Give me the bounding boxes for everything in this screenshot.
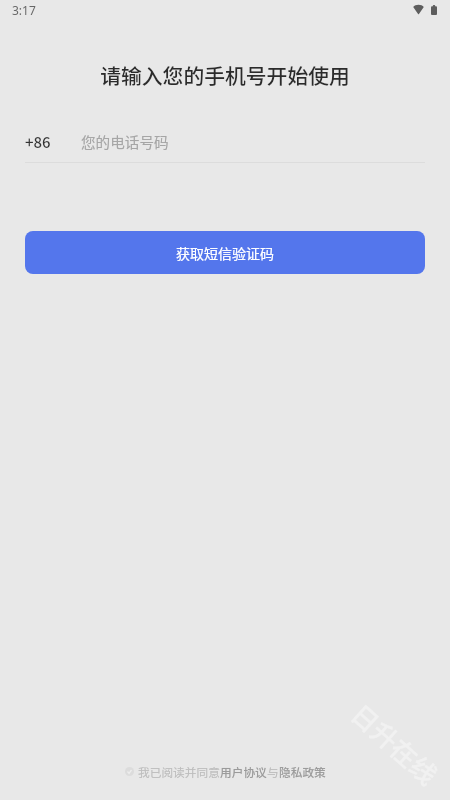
button[interactable]: 获取短信验证码 bbox=[25, 231, 425, 274]
staticText: 3:17 bbox=[12, 2, 36, 18]
staticText: 获取短信验证码 bbox=[176, 243, 274, 263]
staticText: 与 bbox=[267, 763, 279, 780]
staticText: 用户协议 bbox=[220, 763, 267, 780]
staticText: 我已阅读并同意 bbox=[138, 763, 220, 780]
staticText: 隐私政策 bbox=[279, 763, 326, 780]
staticText: 请输入您的手机号开始使用 bbox=[0, 60, 450, 90]
other: Battery bbox=[431, 5, 437, 15]
other: Agree to terms checkbox bbox=[125, 767, 134, 776]
other: Wi-Fi bbox=[413, 5, 424, 14]
button[interactable]: Agree to terms checkbox bbox=[121, 760, 330, 783]
staticText: 您的电话号码 bbox=[81, 131, 169, 152]
staticText: +86 bbox=[25, 131, 51, 153]
